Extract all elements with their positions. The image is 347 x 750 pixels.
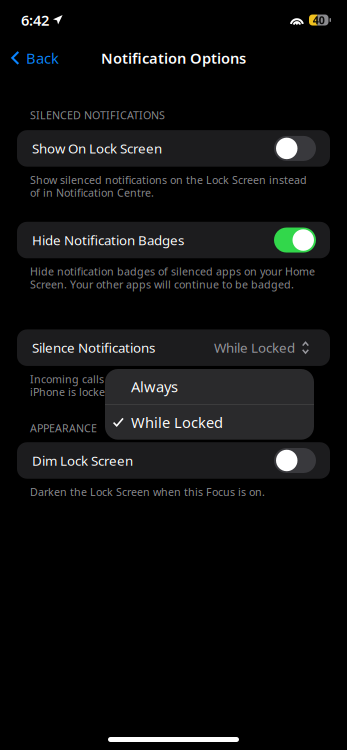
staticText: Darken the Lock Screen when this Focus i…	[30, 485, 265, 499]
staticText: While Locked	[214, 339, 295, 356]
staticText: Silence Notifications	[32, 339, 155, 356]
button[interactable]: Hide Notification Badges	[17, 222, 330, 258]
staticText: Show silenced notifications on the Lock …	[30, 173, 307, 200]
staticText: While Locked	[131, 412, 223, 432]
button[interactable]: Dim Lock Screen	[17, 442, 330, 479]
staticText: Dim Lock Screen	[32, 452, 133, 469]
button[interactable]: Show On Lock Screen	[17, 130, 330, 167]
staticText: 6:42	[21, 10, 49, 30]
staticText: Show On Lock Screen	[32, 140, 162, 157]
staticText: APPEARANCE	[30, 421, 97, 435]
staticText: Hide Notification Badges	[32, 231, 184, 249]
button[interactable]: Silence Notifications	[17, 329, 330, 366]
staticText: Incoming calls and messages are silenced…	[30, 372, 299, 399]
staticText: SILENCED NOTIFICATIONS	[30, 108, 165, 122]
staticText: Always	[131, 377, 178, 396]
staticText: 40	[313, 13, 325, 27]
staticText: Hide notification badges of silenced app…	[30, 264, 315, 291]
button[interactable]: Back	[0, 41, 69, 75]
button[interactable]: While Locked	[105, 405, 314, 440]
staticText: Notification Options	[101, 48, 246, 68]
button[interactable]: Always	[105, 369, 314, 404]
staticText: Back	[26, 48, 59, 68]
